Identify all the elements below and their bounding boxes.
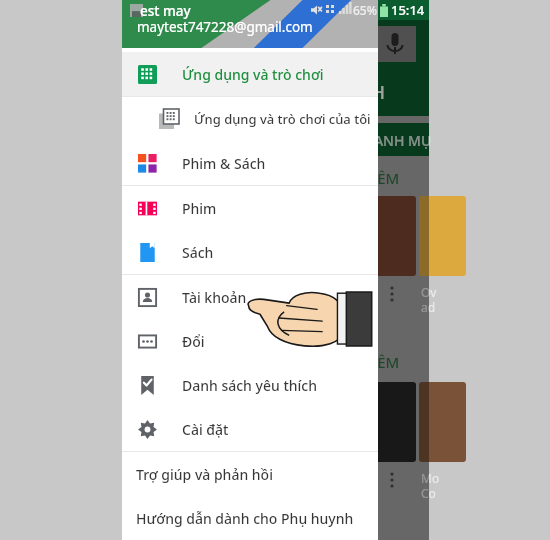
button[interactable]: Ứng dụng và trò chơi của tôi [122,97,378,141]
button[interactable]: Phim [122,186,378,230]
staticText: 65% [353,2,377,18]
staticText: maytest747228@gmail.com [137,18,313,36]
staticText: HÊM [366,168,400,188]
button[interactable]: Trợ giúp và phản hồi [122,452,378,496]
staticText: 15:14 [391,1,425,19]
staticText: CH [360,80,385,105]
button[interactable]: Đổi [122,319,378,363]
staticText: Ứng dụng và trò chơi [182,65,324,84]
button[interactable]: Danh sách yêu thích [122,363,378,407]
staticText: Đổi [182,332,205,351]
button[interactable]: Cài đặt [122,407,378,451]
button[interactable]: Tài khoản [122,275,378,319]
button[interactable]: Phim & Sách [122,141,378,185]
staticText: Cài đặt [182,420,229,439]
staticText: Danh sách yêu thích [182,376,317,395]
staticText: Phim [182,199,217,218]
staticText: í [370,316,374,332]
staticText: Phim & Sách [182,154,266,173]
staticText: Tài khoản [182,288,247,307]
button[interactable]: Ứng dụng và trò chơi [122,52,378,96]
button[interactable]: Voice search [374,26,416,62]
staticText: Sách [182,243,214,262]
button[interactable]: Sách [122,230,378,274]
staticText: Ov ad [421,284,437,315]
staticText: est may [140,2,191,20]
staticText: Trợ giúp và phản hồi [136,465,273,484]
button[interactable]: Hướng dẫn dành cho Phụ huynh [122,496,378,540]
staticText: Mo Co [421,470,440,501]
staticText: Hướng dẫn dành cho Phụ huynh [136,509,354,528]
staticText: DANH MỤ [364,131,432,150]
staticText: HÊM [366,352,400,372]
staticText: Ứng dụng và trò chơi của tôi [194,110,371,128]
